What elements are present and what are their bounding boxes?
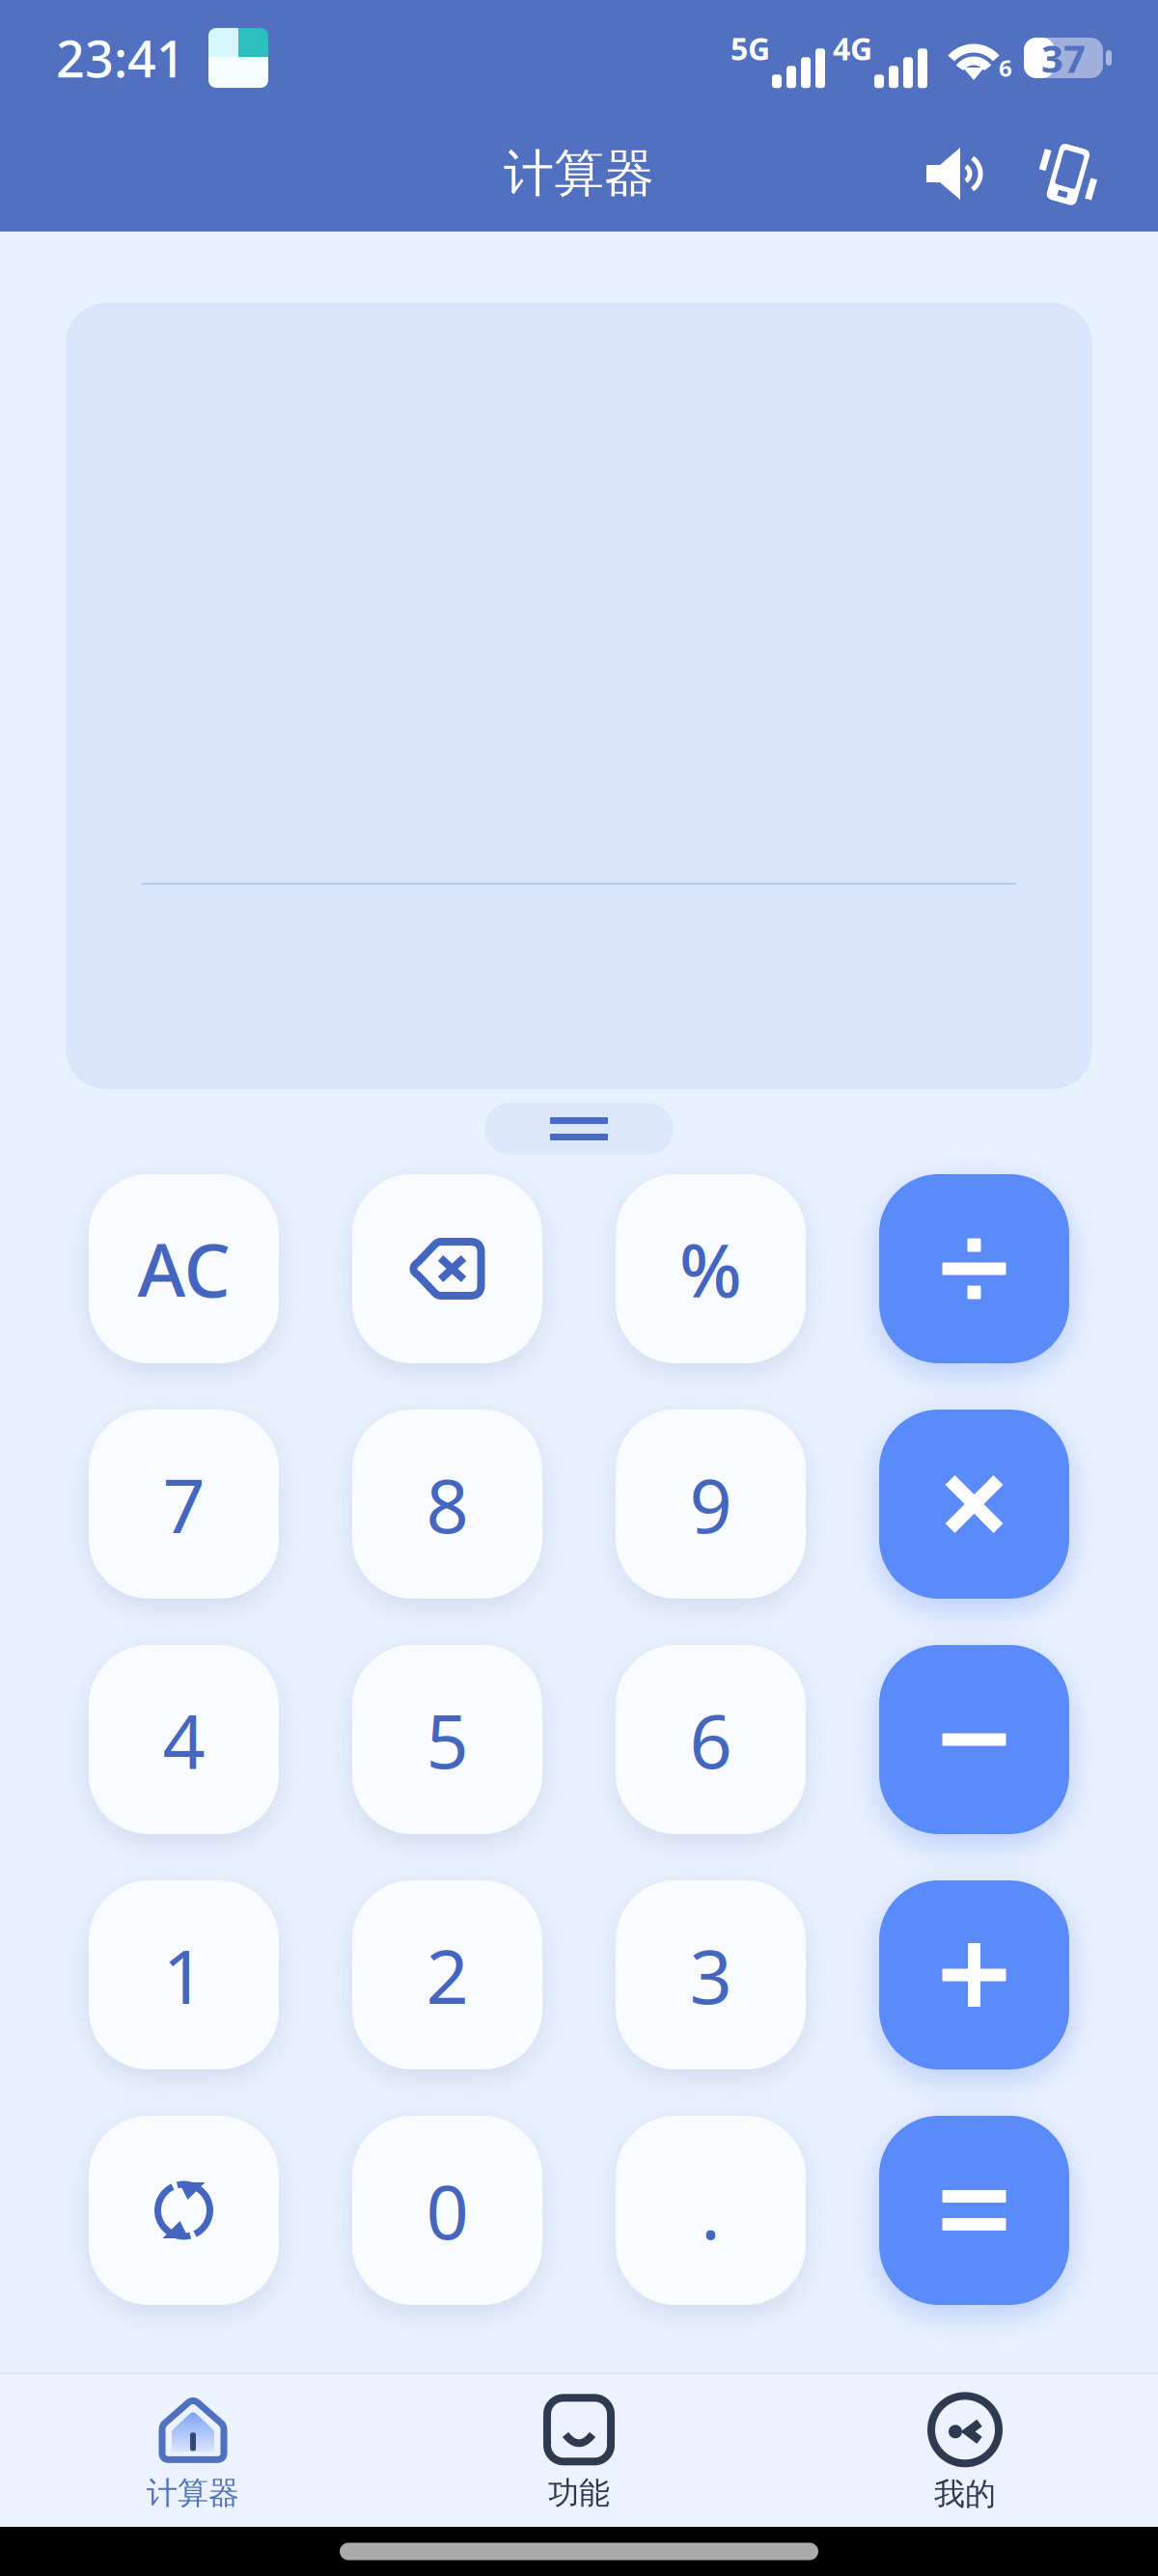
button[interactable] — [879, 2116, 1069, 2305]
staticText: AC — [138, 1220, 230, 1317]
staticText: 8 — [426, 1455, 469, 1554]
button[interactable]: 6 — [616, 1645, 806, 1834]
staticText: 5G — [731, 28, 770, 69]
button[interactable]: Sound — [924, 147, 984, 201]
button[interactable]: 2 — [352, 1880, 542, 2069]
button[interactable]: AC — [89, 1174, 279, 1363]
button[interactable]: 计算器 — [0, 2379, 386, 2522]
staticText: 3 — [689, 1925, 732, 2025]
button[interactable]: 5 — [352, 1645, 542, 1834]
button[interactable] — [879, 1410, 1069, 1599]
staticText: 7 — [163, 1455, 205, 1554]
button[interactable] — [89, 2116, 279, 2305]
button[interactable] — [879, 1880, 1069, 2069]
button[interactable]: 1 — [89, 1880, 279, 2069]
button[interactable] — [879, 1645, 1069, 1834]
staticText: 37 — [1041, 32, 1086, 83]
staticText: 1 — [163, 1925, 205, 2025]
staticText: 0 — [426, 2161, 469, 2260]
staticText: 4 — [163, 1690, 205, 1789]
button[interactable]: 9 — [616, 1410, 806, 1599]
staticText: 9 — [689, 1455, 732, 1554]
staticText: 我的 — [934, 2475, 996, 2513]
button[interactable] — [879, 1174, 1069, 1363]
staticText: 23:41 — [56, 25, 185, 91]
staticText: 计算器 — [504, 143, 654, 205]
button[interactable]: Vibrate — [1029, 140, 1102, 207]
staticText: 5 — [426, 1690, 469, 1789]
staticText: 6 — [689, 1690, 732, 1789]
button[interactable]: . — [616, 2116, 806, 2305]
button[interactable]: % — [616, 1174, 806, 1363]
button[interactable]: 0 — [352, 2116, 542, 2305]
staticText: % — [679, 1220, 742, 1317]
staticText: 功能 — [548, 2474, 610, 2512]
button[interactable]: 8 — [352, 1410, 542, 1599]
staticText: 6 — [999, 52, 1012, 83]
staticText: . — [701, 2161, 721, 2260]
staticText: 4G — [833, 28, 872, 69]
button[interactable]: 功能 — [386, 2379, 772, 2522]
staticText: 计算器 — [147, 2474, 239, 2512]
button[interactable]: 3 — [616, 1880, 806, 2069]
button[interactable]: 4 — [89, 1645, 279, 1834]
button[interactable]: 我的 — [772, 2379, 1158, 2523]
button[interactable]: 7 — [89, 1410, 279, 1599]
staticText: 2 — [426, 1925, 469, 2025]
button[interactable]: Expand keypad — [484, 1103, 674, 1155]
button[interactable] — [352, 1174, 542, 1363]
